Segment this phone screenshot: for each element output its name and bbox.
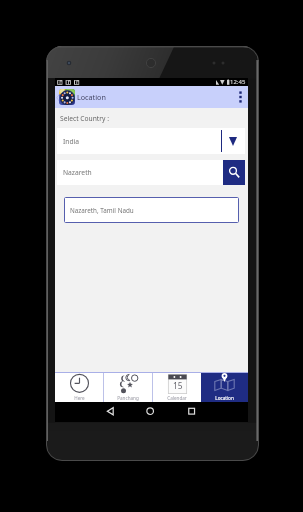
button[interactable]: Here (55, 373, 103, 402)
staticText: Location (77, 92, 106, 102)
button[interactable]: Panchang (104, 373, 152, 402)
button[interactable]: More options (232, 86, 248, 108)
staticText: 12:45 (230, 78, 246, 86)
button[interactable]: Location (201, 373, 248, 402)
staticText: Nazareth (63, 168, 92, 177)
staticText: Calendar (167, 395, 187, 401)
staticText: 15 (173, 380, 183, 391)
staticText: India (63, 137, 79, 146)
button[interactable]: India (57, 128, 245, 154)
staticText: Nazareth, Tamil Nadu (70, 206, 134, 215)
staticText: Here (74, 395, 85, 401)
button[interactable]: Search (223, 160, 245, 185)
button[interactable]: Nazareth, Tamil Nadu (64, 197, 239, 223)
button[interactable]: 15 (153, 373, 201, 402)
button[interactable]: Location (55, 86, 248, 108)
button[interactable]: Back (55, 402, 128, 422)
staticText: Select Country : (60, 114, 109, 123)
staticText: Location (215, 395, 234, 401)
staticText: Panchang (117, 395, 139, 401)
button[interactable]: Nazareth (57, 160, 223, 185)
